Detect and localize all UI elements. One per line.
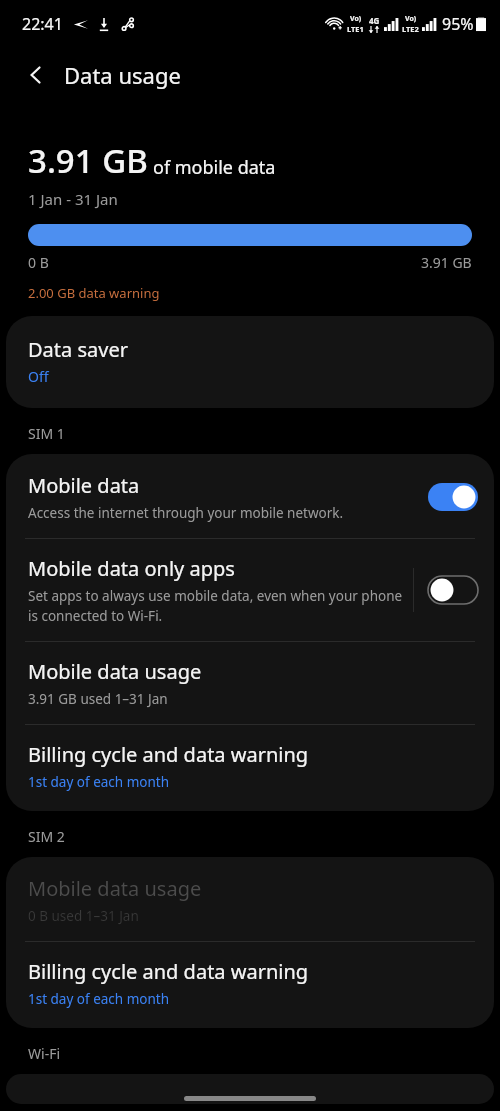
staticText: Billing cycle and data warning [28, 741, 309, 768]
button[interactable]: Mobile data [6, 454, 494, 538]
staticText: Off [28, 367, 49, 386]
staticText: 3.91 GB [421, 253, 472, 272]
button[interactable]: Billing cycle and data warning [6, 725, 494, 811]
button[interactable]: Toggle off [428, 576, 478, 604]
staticText: 1st day of each month [28, 773, 170, 791]
staticText: Mobile data usage [28, 658, 202, 685]
staticText: 22:41 [22, 13, 63, 35]
staticText: 4G [369, 15, 380, 26]
staticText: Data usage [64, 60, 181, 90]
staticText: Vo) [350, 14, 362, 24]
staticText: 0 B used 1–31 Jan [28, 907, 139, 925]
staticText: SIM 2 [28, 827, 65, 846]
staticText: LTE1 [347, 24, 364, 34]
button[interactable]: Mobile data usage [6, 642, 494, 724]
staticText: Data saver [28, 336, 128, 363]
staticText: 3.91 GB [28, 138, 148, 183]
staticText: Access the internet through your mobile … [28, 504, 344, 522]
staticText: 2.00 GB data warning [28, 284, 160, 302]
staticText: Vo) [405, 14, 417, 24]
button[interactable]: Data saver [6, 316, 494, 408]
staticText: Wi-Fi [28, 1044, 61, 1063]
staticText: Mobile data [28, 472, 140, 499]
button[interactable]: Back [14, 53, 58, 97]
staticText: 1st day of each month [28, 990, 170, 1008]
staticText: 95% [442, 13, 474, 35]
staticText: SIM 1 [28, 424, 65, 443]
button[interactable]: Mobile data only apps [28, 555, 413, 625]
button[interactable] [6, 1074, 494, 1104]
staticText: 0 B [28, 253, 49, 272]
staticText: Set apps to always use mobile data, even… [28, 587, 413, 625]
staticText: Billing cycle and data warning [28, 958, 309, 985]
staticText: Mobile data usage [28, 875, 202, 902]
staticText: LTE2 [402, 24, 419, 34]
staticText: 3.91 GB used 1–31 Jan [28, 690, 168, 708]
button[interactable]: Mobile data usage [6, 857, 494, 941]
button[interactable]: Billing cycle and data warning [6, 942, 494, 1028]
button[interactable]: Toggle on [428, 483, 478, 511]
staticText: of mobile data [153, 155, 276, 180]
staticText: Mobile data only apps [28, 555, 235, 582]
staticText: 1 Jan - 31 Jan [28, 189, 118, 209]
